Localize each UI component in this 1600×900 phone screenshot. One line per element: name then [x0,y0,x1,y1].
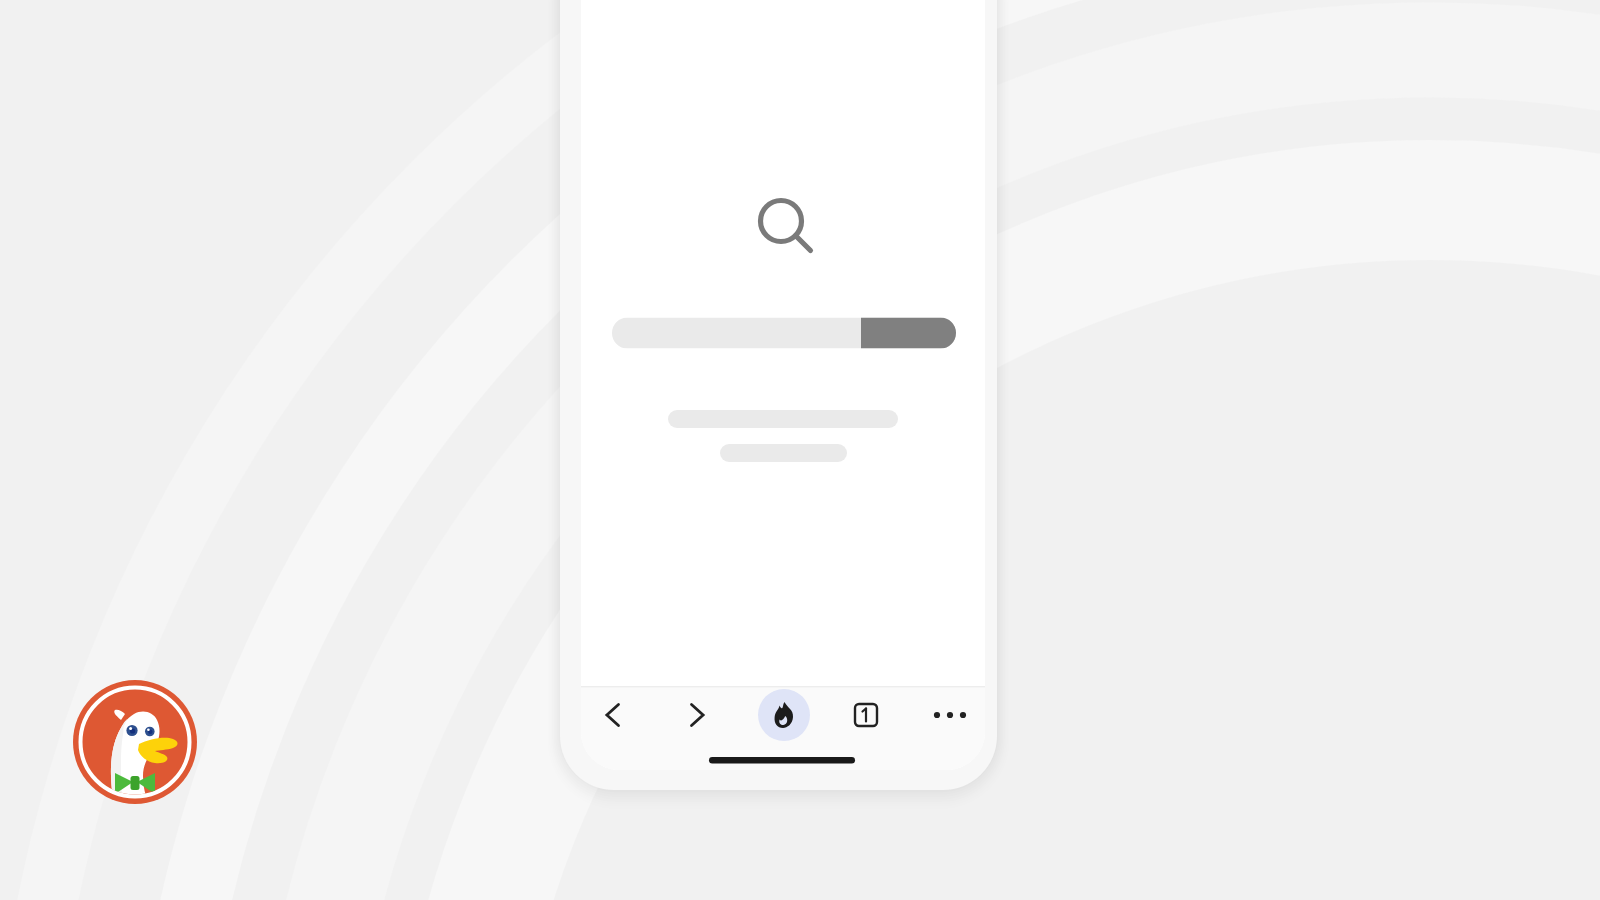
button[interactable]: Tabs, 1 open [841,690,893,742]
button[interactable]: Back [585,690,637,742]
button[interactable]: More options [925,690,977,742]
button[interactable]: Clear browsing data [757,690,811,744]
button[interactable]: Search [612,316,956,350]
button[interactable]: Forward [673,690,725,742]
button[interactable]: DuckDuckGo [73,680,197,804]
